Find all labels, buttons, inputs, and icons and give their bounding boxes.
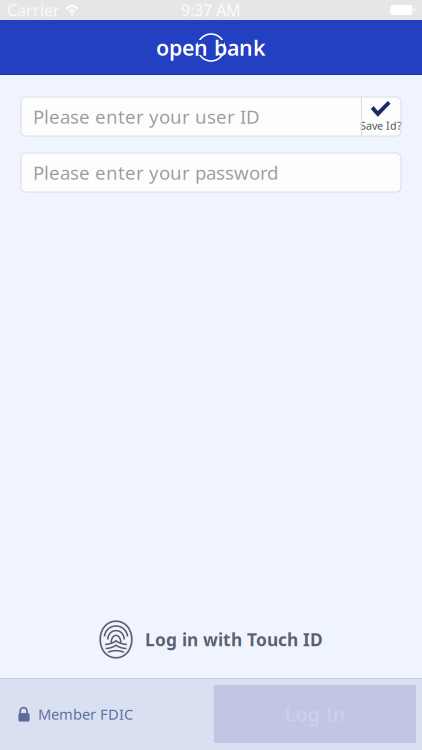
button[interactable]: Save Id? <box>361 97 401 136</box>
staticText: Log in with Touch ID <box>145 628 323 651</box>
staticText: Member FDIC <box>38 704 133 724</box>
staticText: Save Id? <box>360 118 402 133</box>
staticText: Log In <box>284 701 345 727</box>
button[interactable]: Log in with Touch ID <box>99 620 323 659</box>
staticText: 9:37 AM <box>181 0 241 21</box>
staticText: Please enter your password <box>33 160 278 185</box>
staticText: Please enter your user ID <box>33 104 260 129</box>
staticText: open bank <box>156 33 266 62</box>
staticText: Carrier <box>7 0 60 21</box>
